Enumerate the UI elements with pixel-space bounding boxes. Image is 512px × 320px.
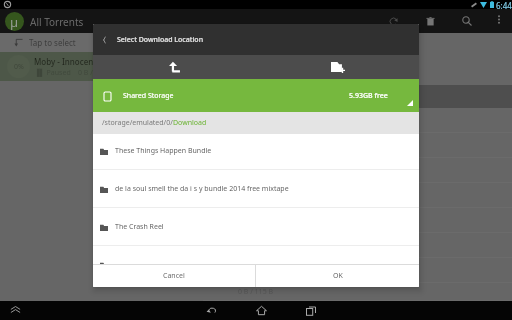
staticText: 5.93GB free xyxy=(349,91,388,101)
button[interactable]: 0% xyxy=(0,52,203,81)
staticText: Tap to select xyxy=(29,37,76,48)
button[interactable]: The Crash Reel xyxy=(93,208,419,246)
button[interactable]: Up one level xyxy=(93,55,256,79)
button[interactable]: 0 B / 77 MB xyxy=(203,233,512,258)
staticText: Moby - Innocents xyxy=(34,56,101,67)
button[interactable]: Recent apps xyxy=(286,301,336,320)
button[interactable]: Delete xyxy=(418,9,442,33)
button[interactable]: de la soul smell the da i s y bundle 201… xyxy=(93,170,419,208)
button[interactable]: 0 B / 6.7 MB xyxy=(203,208,512,233)
staticText: 0 B / 77 MB xyxy=(238,241,276,251)
button[interactable]: Back xyxy=(98,33,111,46)
staticText: de la soul smell the da i s y bundle 201… xyxy=(115,184,289,194)
staticText: 0 B / 115 B xyxy=(238,266,273,276)
button[interactable]: More options xyxy=(489,9,509,29)
button[interactable]: New folder xyxy=(256,55,419,79)
button[interactable]: 0 B / 115 B xyxy=(203,258,512,283)
staticText: All Torrents xyxy=(30,15,84,29)
staticText: 0 B / 14 MB xyxy=(238,166,276,176)
button[interactable]: Cancel xyxy=(93,265,255,287)
staticText: 0 B / 115 B xyxy=(238,287,273,297)
button[interactable] xyxy=(93,246,419,264)
button[interactable]: 0 B / 14 MB xyxy=(203,158,512,183)
button[interactable]: Shared Storage xyxy=(93,79,419,112)
staticText: These Things Happen Bundle xyxy=(115,146,212,156)
button[interactable]: These Things Happen Bundle xyxy=(93,134,419,170)
staticText: The Crash Reel xyxy=(115,222,164,232)
button[interactable]: 0 B / 3.7 kB xyxy=(203,108,512,133)
staticText: 0% xyxy=(14,62,24,72)
button[interactable]: Navigate up xyxy=(0,301,30,320)
staticText: OK xyxy=(333,271,343,281)
staticText: Shared Storage xyxy=(123,91,174,101)
button[interactable]: Refresh xyxy=(381,9,405,33)
button[interactable]: Home xyxy=(236,301,286,320)
staticText: µ xyxy=(10,13,19,31)
button[interactable]: Search xyxy=(455,9,479,33)
button[interactable]: Back xyxy=(186,301,236,320)
staticText: Download xyxy=(173,118,207,128)
button[interactable]: 0 B / 115 B xyxy=(203,133,512,158)
button[interactable]: 0 B / 5 MB xyxy=(203,183,512,208)
staticText: Cancel xyxy=(163,271,185,281)
staticText: ▐▌ Paused 0 B / 104 MB xyxy=(34,68,120,78)
staticText: Select Download Location xyxy=(117,35,204,45)
button[interactable]: Tap to select xyxy=(0,33,203,52)
button[interactable]: /storage/emulated/0/ xyxy=(93,112,419,134)
button[interactable]: 0 B / 115 B xyxy=(203,283,512,301)
staticText: /storage/emulated/0/ xyxy=(102,118,173,128)
staticText: 6:44 xyxy=(496,0,512,9)
button[interactable]: Back xyxy=(93,24,419,55)
button[interactable]: OK xyxy=(256,265,419,287)
